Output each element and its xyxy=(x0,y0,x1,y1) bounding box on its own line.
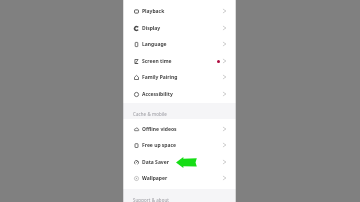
staticText: Cache & mobile xyxy=(133,111,167,117)
button[interactable]: Screen time xyxy=(123,53,236,69)
button[interactable]: Language xyxy=(123,36,236,52)
staticText: Support & about xyxy=(133,197,169,202)
staticText: Offline videos xyxy=(142,126,177,133)
staticText: Language xyxy=(142,41,167,48)
button[interactable]: Wallpaper xyxy=(123,170,236,186)
staticText: Wallpaper xyxy=(142,175,168,182)
button[interactable]: Family Pairing xyxy=(123,69,236,85)
staticText: Playback xyxy=(142,8,165,15)
button[interactable]: Playback xyxy=(123,3,236,19)
staticText: Display xyxy=(142,25,161,32)
button[interactable]: Data Saver xyxy=(123,154,236,170)
other: Annotation arrow pointing at Data Saver xyxy=(176,157,197,168)
button[interactable]: Free up space xyxy=(123,137,236,153)
staticText: Free up space xyxy=(142,142,177,149)
staticText: Data Saver xyxy=(142,159,169,166)
button[interactable]: Accessibility xyxy=(123,86,236,102)
staticText: Accessibility xyxy=(142,91,173,98)
button[interactable]: Offline videos xyxy=(123,121,236,137)
staticText: Screen time xyxy=(142,58,172,65)
staticText: Family Pairing xyxy=(142,74,178,81)
button[interactable]: Display xyxy=(123,20,236,36)
